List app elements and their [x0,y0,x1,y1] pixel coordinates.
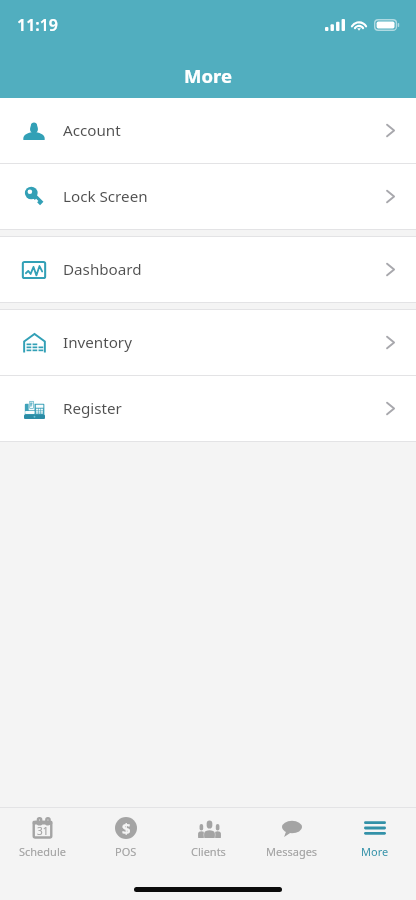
button[interactable]: POS [84,808,167,878]
staticText: 31 [37,824,49,838]
staticText: Account [63,120,121,141]
staticText: More [361,844,389,859]
button[interactable]: Messages [250,808,333,878]
staticText: Messages [266,844,318,859]
staticText: $ [122,818,131,838]
staticText: POS [115,844,137,859]
button[interactable]: Lock Screen [0,164,416,229]
button[interactable]: More [333,808,416,878]
button[interactable]: Schedule [0,808,84,878]
button[interactable]: Register [0,376,416,441]
staticText: Clients [191,844,226,859]
button[interactable]: Clients [167,808,250,878]
staticText: Register [63,398,122,419]
button[interactable]: Account [0,98,416,163]
button[interactable]: Dashboard [0,237,416,302]
staticText: More [184,63,232,88]
staticText: Lock Screen [63,186,148,207]
staticText: Dashboard [63,259,142,280]
staticText: Schedule [19,844,66,859]
button[interactable]: Inventory [0,310,416,375]
staticText: Inventory [63,332,132,353]
staticText: 11:19 [17,14,59,36]
